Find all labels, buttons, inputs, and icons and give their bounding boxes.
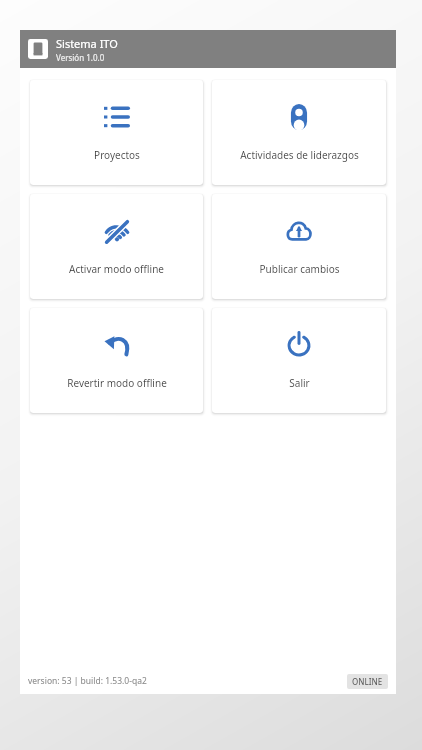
staticText: Versión 1.0.0 [56, 52, 105, 63]
staticText: Proyectos [94, 148, 140, 162]
button[interactable]: Proyectos [30, 80, 203, 185]
button[interactable]: Salir [212, 308, 386, 413]
button[interactable]: Revertir modo offline [30, 308, 203, 413]
staticText: Sistema ITO [56, 36, 118, 51]
button[interactable]: Activar modo offline [30, 194, 203, 299]
staticText: Salir [289, 376, 310, 390]
staticText: Activar modo offline [69, 262, 164, 276]
staticText: Publicar cambios [259, 262, 340, 276]
other: App logo [28, 39, 48, 59]
staticText: ONLINE [352, 676, 383, 687]
staticText: version: 53 | build: 1.53.0-qa2 [28, 675, 147, 687]
button[interactable]: Publicar cambios [212, 194, 386, 299]
button[interactable]: Actividades de liderazgos [212, 80, 386, 185]
staticText: Actividades de liderazgos [240, 148, 359, 162]
staticText: Revertir modo offline [67, 376, 167, 390]
button[interactable]: ONLINE [347, 674, 388, 689]
